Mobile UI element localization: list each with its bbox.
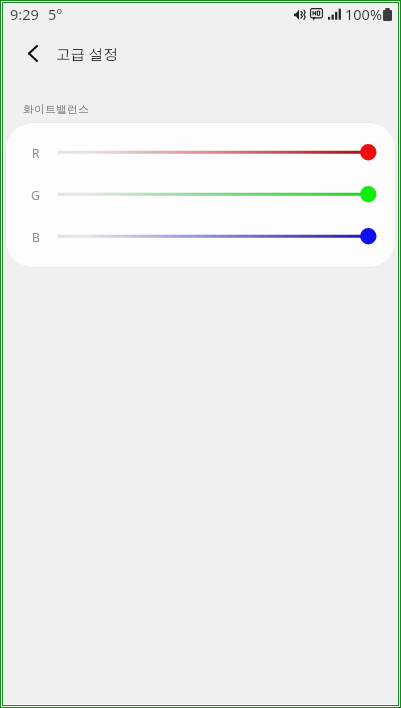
staticText: 9:29 <box>10 4 39 24</box>
button[interactable]: Back <box>9 28 56 78</box>
button[interactable] <box>58 174 379 216</box>
staticText: 화이트밸런스 <box>23 102 89 116</box>
button[interactable] <box>58 132 379 174</box>
staticText: 고급 설정 <box>56 43 118 63</box>
staticText: 5° <box>48 4 63 24</box>
button[interactable] <box>58 216 379 258</box>
staticText: B <box>32 229 40 245</box>
staticText: G <box>31 187 40 203</box>
staticText: R <box>32 145 40 161</box>
staticText: 100% <box>345 4 382 24</box>
